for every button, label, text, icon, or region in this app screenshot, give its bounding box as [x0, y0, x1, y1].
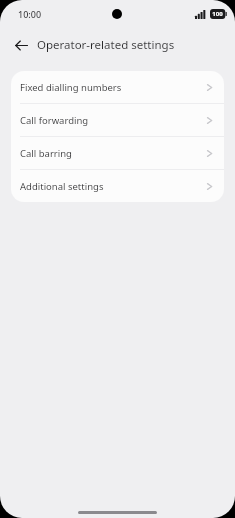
staticText: Operator-related settings: [37, 37, 175, 53]
button[interactable]: Call forwarding: [11, 104, 224, 136]
staticText: Call forwarding: [20, 114, 206, 127]
button[interactable]: Call barring: [11, 137, 224, 169]
staticText: Additional settings: [20, 180, 206, 193]
button[interactable]: Additional settings: [11, 170, 224, 202]
staticText: 100: [212, 10, 223, 18]
button[interactable]: Fixed dialling numbers: [11, 71, 224, 103]
staticText: Call barring: [20, 147, 206, 160]
staticText: Fixed dialling numbers: [20, 81, 206, 94]
button[interactable]: Back: [8, 32, 34, 58]
staticText: 10:00: [18, 8, 42, 20]
